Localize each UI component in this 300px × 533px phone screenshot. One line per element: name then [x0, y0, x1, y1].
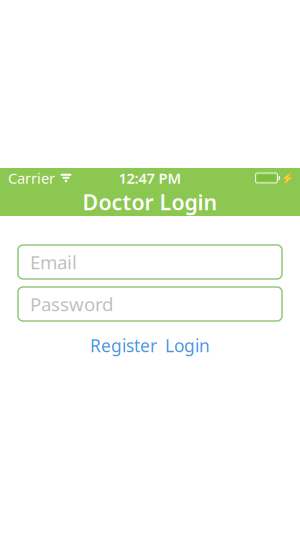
button[interactable]: Register [90, 334, 157, 357]
staticText: Login [165, 334, 210, 357]
staticText: Doctor Login [82, 188, 217, 216]
staticText: Register [90, 334, 157, 357]
button[interactable]: Login [165, 334, 210, 357]
button[interactable]: Password [0, 287, 300, 321]
staticText: Password [30, 292, 113, 316]
staticText: 12:47 PM [118, 168, 181, 188]
staticText: Carrier [8, 168, 55, 188]
staticText: ⚡ [281, 172, 294, 184]
staticText: Email [30, 250, 77, 274]
button[interactable]: Email [0, 245, 300, 279]
